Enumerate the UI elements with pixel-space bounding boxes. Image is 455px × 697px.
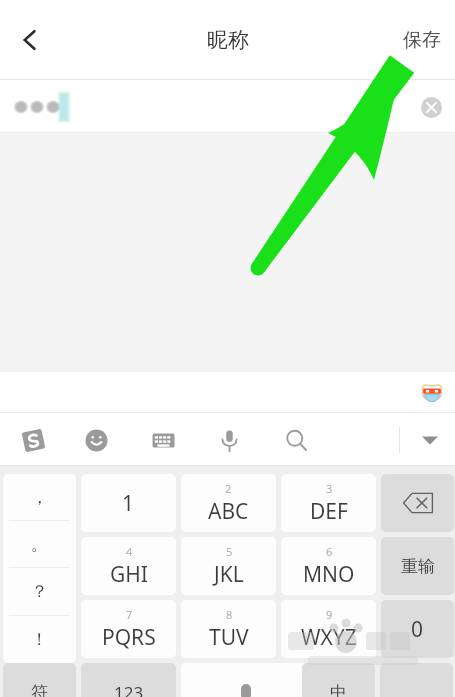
- button[interactable]: Back: [4, 14, 56, 66]
- staticText: 2: [225, 481, 232, 496]
- button[interactable]: Voice input: [206, 417, 252, 463]
- staticText: MNO: [303, 560, 355, 589]
- staticText: 3: [326, 481, 333, 496]
- button[interactable]: 7: [81, 600, 176, 658]
- staticText: 7: [126, 607, 133, 622]
- button[interactable]: 0: [381, 600, 454, 658]
- staticText: DEF: [310, 497, 348, 526]
- staticText: JKL: [214, 560, 244, 589]
- button[interactable]: ？: [3, 568, 76, 615]
- button[interactable]: 9: [281, 600, 376, 658]
- button[interactable]: Space: [181, 663, 311, 697]
- button[interactable]: 中: [302, 663, 375, 697]
- staticText: 1: [122, 489, 135, 518]
- staticText: ABC: [208, 497, 249, 526]
- staticText: 5: [226, 544, 233, 559]
- button[interactable]: 6: [281, 537, 376, 595]
- button[interactable]: 4: [81, 537, 176, 595]
- button[interactable]: Keyboard layout: [140, 417, 186, 463]
- button[interactable]: 保存: [389, 12, 455, 68]
- staticText: PQRS: [102, 623, 156, 652]
- staticText: 保存: [403, 28, 441, 52]
- staticText: 4: [126, 544, 133, 559]
- button[interactable]: 2: [181, 474, 276, 532]
- button[interactable]: Search: [273, 417, 319, 463]
- staticText: ？: [31, 581, 48, 602]
- staticText: 0: [411, 615, 424, 644]
- staticText: 昵称: [207, 27, 249, 53]
- staticText: 123: [114, 681, 144, 697]
- button[interactable]: Sticker: [415, 376, 449, 410]
- button[interactable]: Clear text: [414, 90, 448, 124]
- staticText: 9: [326, 607, 333, 622]
- button[interactable]: 3: [281, 474, 376, 532]
- staticText: 6: [326, 544, 333, 559]
- button[interactable]: Clear text: [0, 80, 455, 133]
- staticText: GHI: [110, 560, 148, 589]
- button[interactable]: 1: [81, 474, 176, 532]
- button[interactable]: ！: [3, 616, 76, 663]
- staticText: ，: [31, 487, 48, 508]
- button[interactable]: 5: [181, 537, 276, 595]
- button[interactable]: 。: [3, 521, 76, 567]
- staticText: ！: [31, 629, 48, 650]
- button[interactable]: Sogou input settings: [10, 417, 56, 463]
- button[interactable]: ，: [3, 474, 76, 520]
- button[interactable]: 123: [81, 663, 176, 697]
- staticText: TUV: [209, 623, 249, 652]
- button[interactable]: Emoji: [73, 417, 119, 463]
- button[interactable]: Backspace: [381, 474, 454, 532]
- staticText: WXYZ: [301, 623, 357, 652]
- staticText: 。: [31, 534, 48, 555]
- staticText: 8: [226, 607, 233, 622]
- staticText: 符: [31, 682, 48, 697]
- button[interactable]: 符: [3, 663, 76, 697]
- button[interactable]: 8: [181, 600, 276, 658]
- button[interactable]: Hide keyboard: [408, 418, 452, 462]
- staticText: 中: [330, 682, 347, 697]
- staticText: 重输: [401, 556, 435, 577]
- button[interactable]: 重输: [381, 537, 454, 595]
